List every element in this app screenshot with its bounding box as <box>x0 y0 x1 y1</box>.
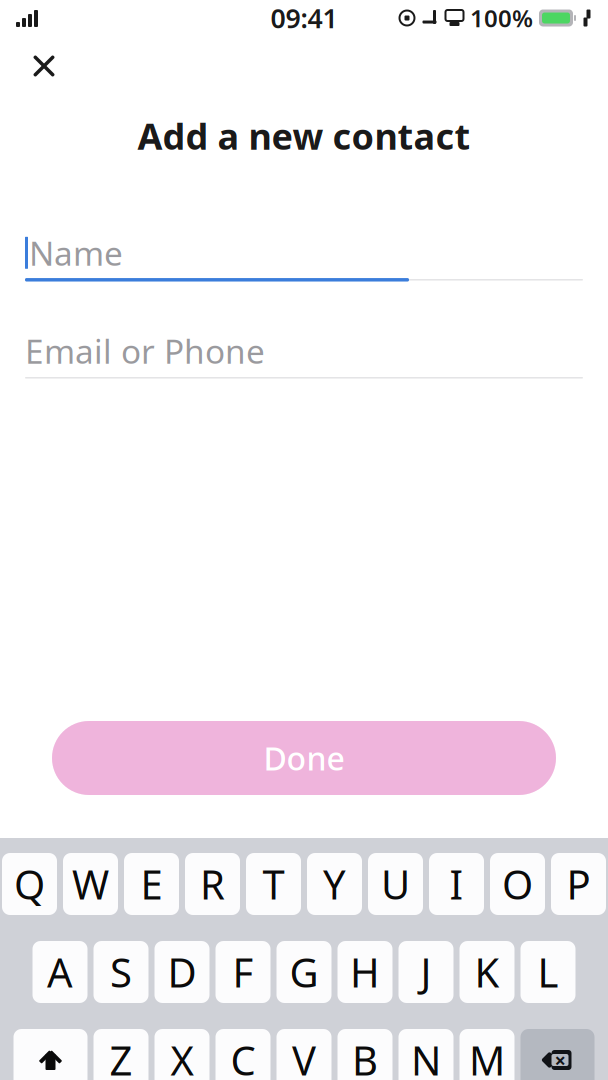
button[interactable]: M <box>459 1029 514 1080</box>
button[interactable]: V <box>276 1029 331 1080</box>
staticText: D <box>167 945 196 998</box>
staticText: Q <box>14 857 45 910</box>
button[interactable]: Shift <box>13 1029 87 1080</box>
staticText: S <box>110 945 132 998</box>
staticText: X <box>170 1033 193 1080</box>
button[interactable]: Q <box>2 853 57 915</box>
staticText: H <box>350 945 380 998</box>
button[interactable]: R <box>185 853 240 915</box>
button[interactable]: L <box>520 941 575 1003</box>
button[interactable]: S <box>93 941 148 1003</box>
staticText: U <box>381 857 410 910</box>
button[interactable]: O <box>490 853 545 915</box>
staticText: L <box>537 945 558 998</box>
button[interactable]: I <box>429 853 484 915</box>
button[interactable]: Z <box>93 1029 148 1080</box>
button[interactable]: K <box>459 941 514 1003</box>
staticText: I <box>449 857 463 910</box>
button[interactable]: J <box>398 941 453 1003</box>
button[interactable]: A <box>32 941 87 1003</box>
button[interactable]: Delete <box>520 1029 594 1080</box>
staticText: Name <box>29 231 123 275</box>
staticText: C <box>230 1033 255 1080</box>
staticText: Z <box>109 1033 132 1080</box>
button[interactable]: E <box>124 853 179 915</box>
staticText: B <box>352 1033 378 1080</box>
button[interactable]: F <box>215 941 270 1003</box>
staticText: Email or Phone <box>25 329 265 373</box>
button[interactable]: T <box>246 853 301 915</box>
button[interactable]: U <box>368 853 423 915</box>
staticText: 100% <box>470 2 533 34</box>
button[interactable]: B <box>337 1029 392 1080</box>
staticText: E <box>140 857 162 910</box>
button[interactable]: Y <box>307 853 362 915</box>
staticText: Add a new contact <box>137 112 470 160</box>
staticText: O <box>502 857 533 910</box>
staticText: G <box>289 945 318 998</box>
button[interactable]: N <box>398 1029 453 1080</box>
button[interactable]: G <box>276 941 331 1003</box>
button[interactable]: X <box>154 1029 209 1080</box>
button[interactable]: H <box>337 941 392 1003</box>
staticText: × <box>554 1047 565 1073</box>
staticText: 09:41 <box>270 0 337 36</box>
button[interactable]: W <box>63 853 118 915</box>
button[interactable]: C <box>215 1029 270 1080</box>
staticText: A <box>47 945 73 998</box>
staticText: Done <box>263 737 344 779</box>
staticText: N <box>411 1033 441 1080</box>
staticText: W <box>72 857 109 910</box>
button[interactable]: P <box>551 853 606 915</box>
staticText: P <box>566 857 590 910</box>
button[interactable]: Done <box>52 721 556 795</box>
staticText: F <box>232 945 253 998</box>
staticText: T <box>262 857 284 910</box>
staticText: M <box>469 1033 505 1080</box>
button[interactable]: D <box>154 941 209 1003</box>
staticText: K <box>474 945 499 998</box>
button[interactable]: Close <box>18 40 70 92</box>
staticText: V <box>292 1033 316 1080</box>
staticText: J <box>420 945 431 998</box>
staticText: R <box>200 857 225 910</box>
staticText: Y <box>323 857 346 910</box>
